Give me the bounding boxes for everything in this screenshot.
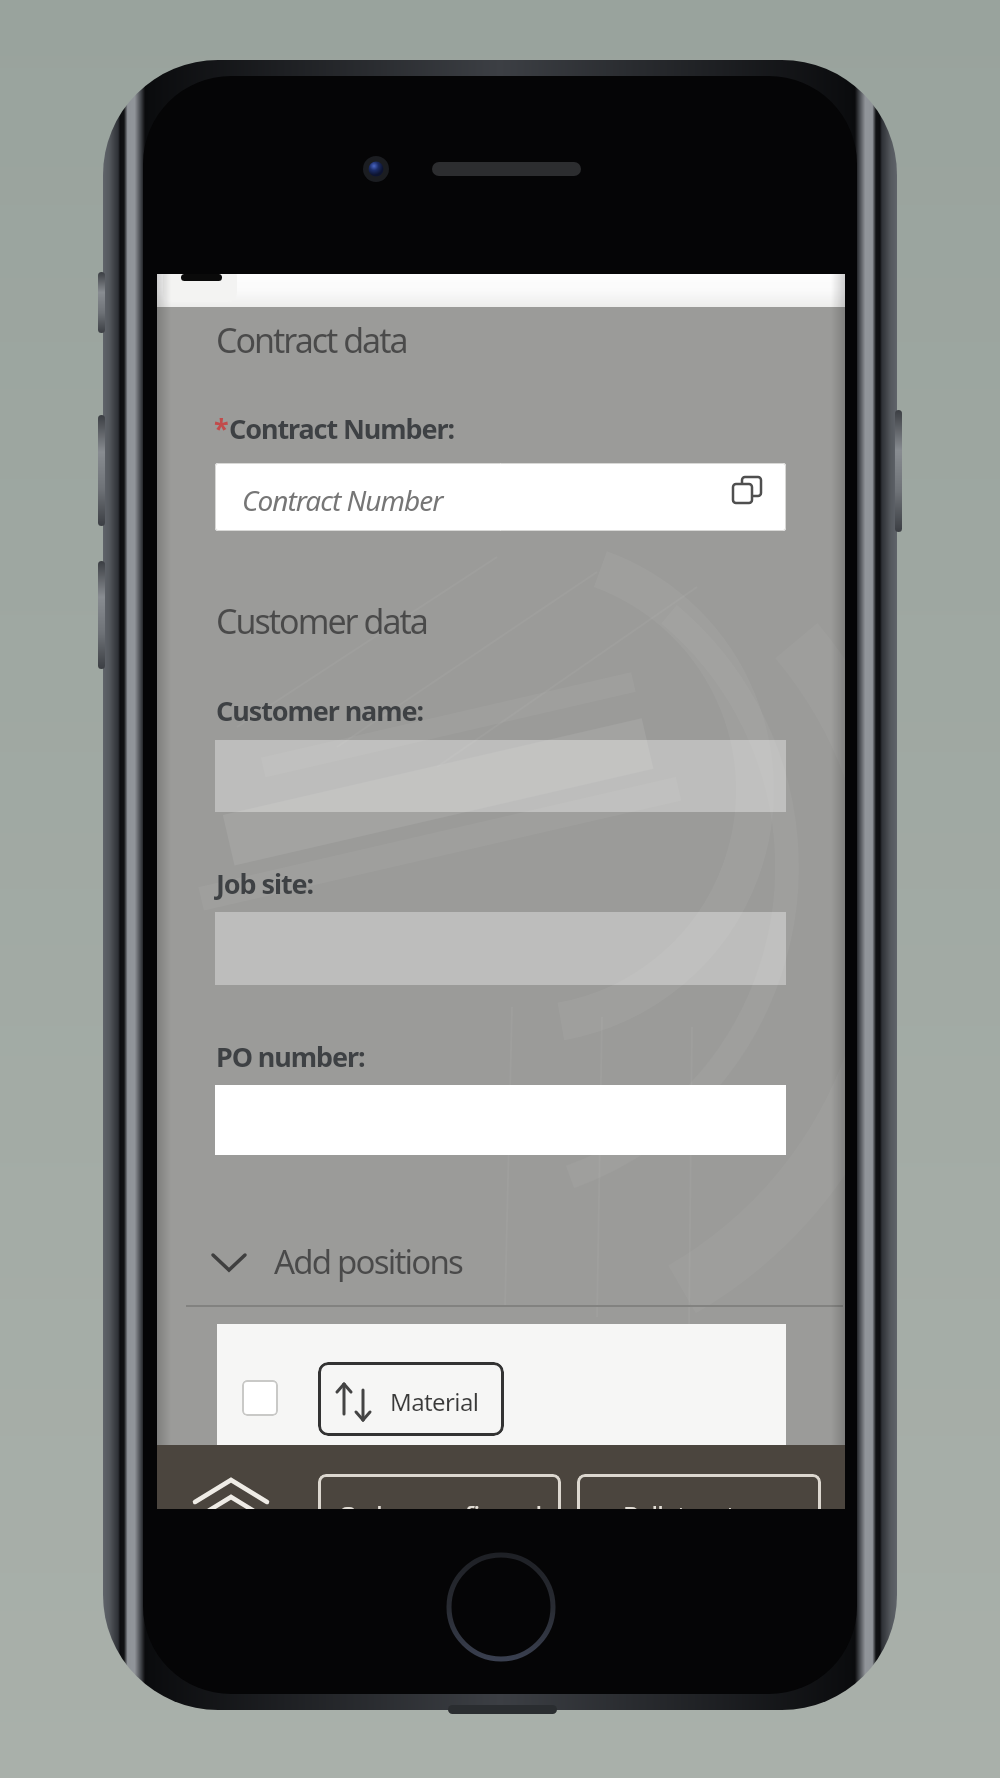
staticText: Customer name: [216,692,423,729]
staticText: Contract data [216,317,407,363]
staticText: Customer data [216,598,427,644]
staticText: Contract Number: [229,410,454,447]
button[interactable] [242,1380,278,1416]
staticText: Orders confirmed [338,1497,542,1509]
staticText: PO number: [216,1038,365,1075]
staticText: * [214,410,229,447]
staticText: Add positions [274,1239,463,1284]
button[interactable]: Add positions [207,1227,507,1282]
staticText: Pallets return [623,1497,775,1509]
staticText: Contract Number [242,481,443,519]
button[interactable]: Orders confirmed [318,1474,561,1509]
staticText: Job site: [216,865,314,902]
button[interactable]: Pallets return [577,1474,821,1509]
button[interactable]: Contract Number [215,463,786,531]
button[interactable]: Material [318,1362,504,1436]
staticText: Material [390,1385,479,1418]
